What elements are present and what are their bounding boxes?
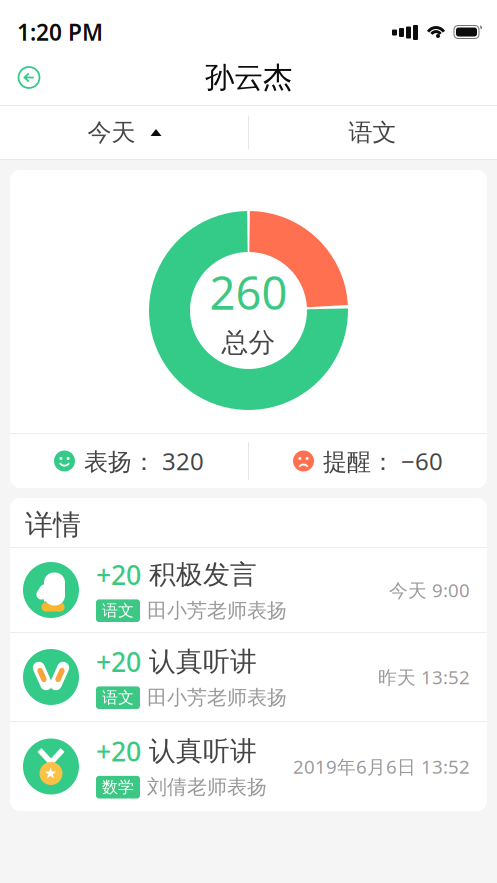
staticText: 数学 [102,777,134,797]
staticText: 语文 [102,688,134,708]
button[interactable]: Back [14,62,44,92]
staticText: 表扬： 320 [84,445,204,477]
staticText: 认真听讲 [149,735,257,768]
staticText: 孙云杰 [205,59,292,95]
staticText: 语文 [102,601,134,621]
button[interactable]: +20 [10,722,487,811]
staticText: 积极发言 [149,558,257,591]
button[interactable]: 语文 [248,106,496,159]
staticText: 260 [209,262,287,322]
button[interactable]: +20 [10,548,487,632]
staticText: +20 [96,644,141,679]
staticText: +20 [96,733,141,769]
button[interactable]: 今天 [0,106,248,159]
staticText: 2019年6月6日 13:52 [293,754,470,779]
staticText: 田小芳老师表扬 [147,685,287,710]
staticText: 今天 9:00 [389,578,470,602]
staticText: 详情 [25,508,81,542]
staticText: 提醒： −60 [323,445,443,477]
button[interactable]: +20 [10,633,487,721]
staticText: 田小芳老师表扬 [147,598,287,623]
staticText: 认真听讲 [149,645,257,678]
staticText: 总分 [221,326,275,359]
staticText: 今天 [87,118,135,147]
staticText: 昨天 13:52 [378,665,470,689]
staticText: 1:20 PM [17,17,103,47]
staticText: +20 [96,557,141,592]
staticText: 刘倩老师表扬 [147,775,267,799]
staticText: 语文 [348,118,396,147]
